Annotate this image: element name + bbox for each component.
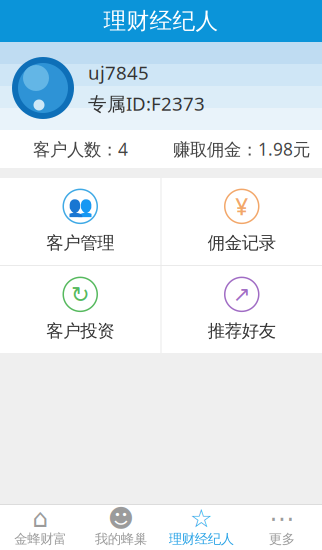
button[interactable]: ↗ (161, 266, 322, 353)
staticText: 我的蜂巢 (95, 531, 147, 547)
button[interactable]: ☻ (80, 505, 161, 549)
button[interactable]: ¥ (161, 178, 322, 265)
staticText: 客户管理 (46, 232, 114, 254)
staticText: 金蜂财富 (14, 531, 66, 547)
staticText: 赚取佣金：1.98元 (173, 137, 310, 160)
staticText: ⌂ (32, 504, 48, 533)
button[interactable]: ↻ (0, 266, 160, 353)
staticText: 👥 (68, 195, 93, 218)
staticText: 理财经纪人 (169, 531, 234, 547)
staticText: ☻ (108, 504, 134, 533)
button[interactable]: 👥 (0, 178, 160, 265)
staticText: ⋯ (269, 504, 294, 533)
staticText: ↻ (71, 281, 90, 307)
staticText: 推荐好友 (208, 320, 276, 342)
staticText: 专属ID:F2373 (88, 91, 205, 116)
staticText: ☆ (190, 504, 213, 533)
staticText: 客户人数：4 (33, 137, 128, 160)
staticText: ↗ (233, 282, 251, 306)
staticText: 佣金记录 (208, 232, 276, 254)
button[interactable]: ⌂ (0, 505, 80, 549)
button[interactable]: ⋯ (241, 505, 322, 549)
staticText: 客户投资 (46, 320, 114, 342)
staticText: ¥ (235, 191, 248, 221)
button[interactable]: ☆ (161, 505, 241, 549)
staticText: uj7845 (88, 60, 149, 85)
staticText: 更多 (269, 531, 295, 547)
staticText: 理财经纪人 (103, 7, 218, 35)
